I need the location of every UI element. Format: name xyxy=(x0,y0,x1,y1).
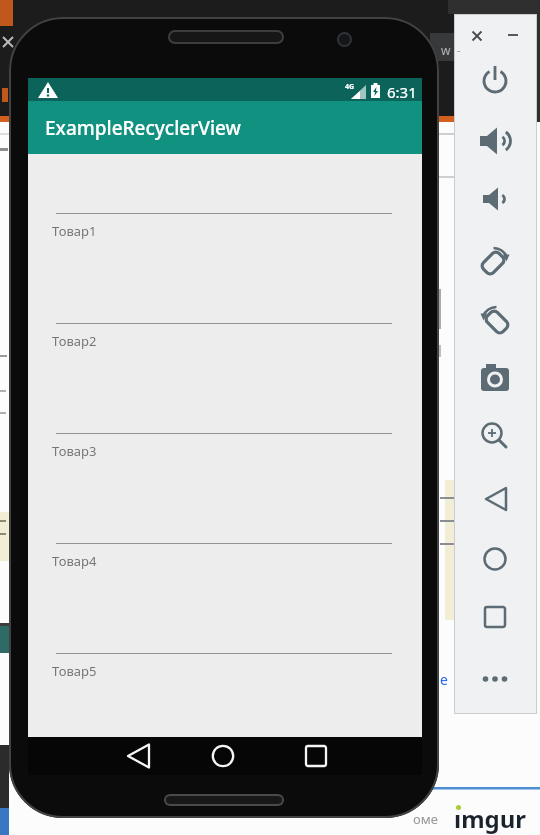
button[interactable]: Товар4 xyxy=(28,543,422,653)
button[interactable] xyxy=(473,477,517,521)
button[interactable] xyxy=(473,119,517,163)
button[interactable]: Товар5 xyxy=(28,653,422,763)
button[interactable] xyxy=(473,355,517,399)
button[interactable] xyxy=(468,27,486,45)
staticText: Товар4 xyxy=(52,552,97,570)
button[interactable] xyxy=(473,177,517,221)
button[interactable]: Товар3 xyxy=(28,433,422,543)
button[interactable] xyxy=(473,297,517,341)
staticText: Товар1 xyxy=(52,222,97,240)
button[interactable] xyxy=(504,26,522,44)
staticText: w - xyxy=(441,42,461,58)
button[interactable] xyxy=(473,657,517,701)
button[interactable]: Товар2 xyxy=(28,323,422,433)
button[interactable] xyxy=(196,739,250,775)
button[interactable] xyxy=(473,238,517,282)
staticText: ExampleRecyclerView xyxy=(45,115,241,141)
button[interactable] xyxy=(473,595,517,639)
staticText: 4G xyxy=(345,82,355,92)
staticText: Товар2 xyxy=(52,332,97,350)
staticText: e xyxy=(440,670,448,689)
button[interactable] xyxy=(112,739,166,775)
staticText: Товар5 xyxy=(52,662,97,680)
staticText: оме xyxy=(413,810,438,828)
button[interactable] xyxy=(289,739,343,775)
button[interactable] xyxy=(473,537,517,581)
staticText: ımgur xyxy=(454,802,527,835)
button[interactable]: Товар1 xyxy=(28,213,422,323)
button[interactable] xyxy=(473,59,517,103)
staticText: 6:31 xyxy=(387,82,417,102)
staticText: Товар3 xyxy=(52,442,97,460)
button[interactable] xyxy=(473,415,517,459)
